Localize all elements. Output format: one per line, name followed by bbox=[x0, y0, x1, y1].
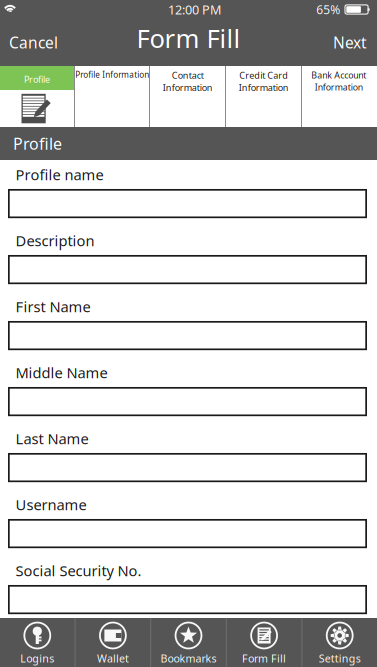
button[interactable]: Logins bbox=[0, 618, 75, 667]
button[interactable]: Profile Information bbox=[75, 66, 149, 127]
staticText: Bookmarks bbox=[160, 651, 216, 665]
staticText: Profile bbox=[13, 133, 62, 154]
staticText: Profile bbox=[24, 73, 50, 85]
staticText: Form Fill bbox=[136, 21, 240, 55]
staticText: Next bbox=[333, 32, 367, 53]
staticText: Middle Name bbox=[15, 362, 107, 382]
staticText: Username bbox=[15, 494, 86, 514]
staticText: 65% bbox=[316, 1, 340, 18]
button[interactable]: Settings bbox=[302, 618, 377, 667]
button[interactable]: Contact Information bbox=[150, 66, 225, 127]
staticText: Profile Information bbox=[75, 69, 149, 80]
staticText: Cancel bbox=[9, 32, 58, 53]
staticText: Logins bbox=[20, 651, 54, 665]
staticText: Bank Account Information bbox=[311, 69, 366, 93]
staticText: Last Name bbox=[15, 428, 88, 448]
staticText: Social Security No. bbox=[15, 560, 141, 580]
staticText: First Name bbox=[15, 296, 90, 316]
button[interactable]: Form Fill bbox=[227, 618, 301, 667]
button[interactable]: Next bbox=[321, 19, 377, 66]
button[interactable]: Bank Account Information bbox=[302, 66, 375, 127]
staticText: Credit Card Information bbox=[238, 69, 288, 94]
staticText: Description bbox=[15, 230, 94, 250]
button[interactable]: Bookmarks bbox=[151, 618, 226, 667]
staticText: Settings bbox=[319, 651, 361, 665]
staticText: Wallet bbox=[97, 651, 129, 665]
staticText: 12:00 PM bbox=[168, 1, 221, 18]
button[interactable]: Profile bbox=[0, 66, 74, 127]
staticText: Profile name bbox=[15, 164, 103, 184]
staticText: Form Fill bbox=[242, 651, 286, 665]
button[interactable]: Credit Card Information bbox=[226, 66, 301, 127]
button[interactable]: Cancel bbox=[0, 19, 70, 66]
button[interactable]: Wallet bbox=[76, 618, 150, 667]
staticText: Contact Information bbox=[162, 69, 212, 94]
